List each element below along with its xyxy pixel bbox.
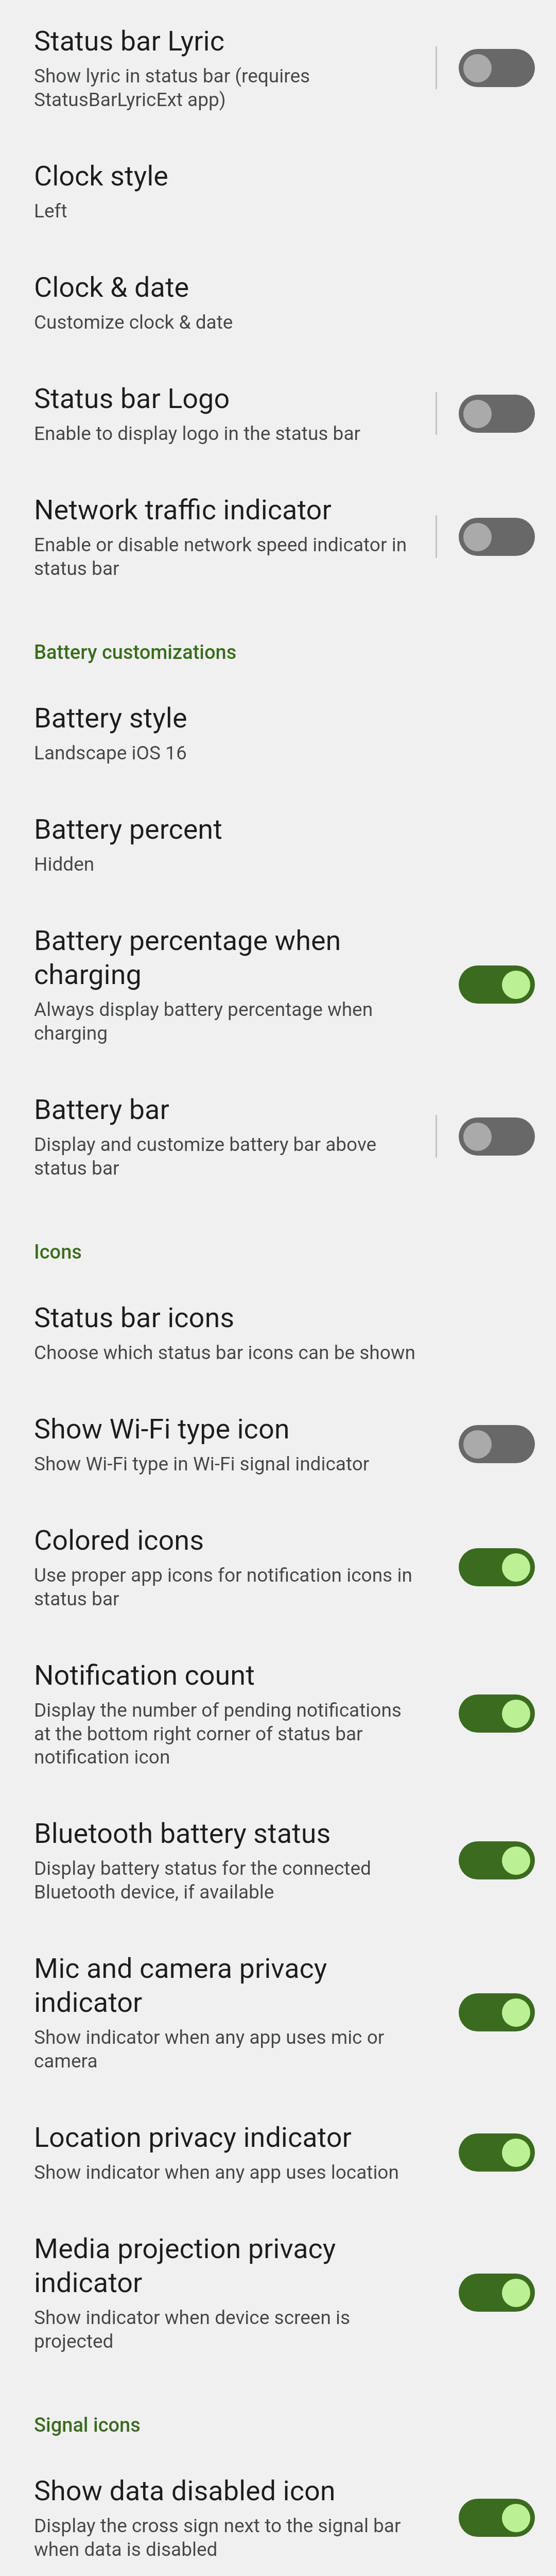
staticText: Show lyric in status bar (requires Statu… bbox=[34, 65, 310, 111]
staticText: Landscape iOS 16 bbox=[34, 742, 187, 764]
staticText: Colored icons bbox=[34, 1524, 204, 1556]
button[interactable]: Show data disabled icon bbox=[459, 2499, 535, 2537]
staticText: Enable to display logo in the status bar bbox=[34, 422, 361, 445]
button[interactable]: Battery percentage when charging bbox=[459, 965, 535, 1004]
button[interactable]: Bluetooth battery status bbox=[0, 1817, 556, 1903]
staticText: Clock & date bbox=[34, 271, 189, 303]
button[interactable]: Show Wi-Fi type icon bbox=[0, 1413, 556, 1475]
staticText: Icons bbox=[34, 1241, 82, 1264]
button[interactable]: Media projection privacy indicator bbox=[459, 2274, 535, 2312]
staticText: Display battery status for the connected… bbox=[34, 1857, 371, 1903]
button[interactable]: Battery bar bbox=[459, 1117, 535, 1156]
staticText: Battery percentage when charging bbox=[34, 924, 341, 991]
button[interactable]: Mic and camera privacy indicator bbox=[0, 1952, 556, 2072]
staticText: Battery customizations bbox=[34, 641, 237, 664]
button[interactable]: Battery bar bbox=[0, 1093, 556, 1179]
staticText: Left bbox=[34, 200, 67, 222]
staticText: Display the cross sign next to the signa… bbox=[34, 2515, 401, 2561]
staticText: Network traffic indicator bbox=[34, 494, 332, 526]
staticText: Battery percent bbox=[34, 813, 222, 845]
staticText: Status bar icons bbox=[34, 1301, 235, 1334]
staticText: Customize clock & date bbox=[34, 311, 233, 333]
staticText: Media projection privacy indicator bbox=[34, 2232, 336, 2299]
button[interactable]: Battery percentage when charging bbox=[0, 924, 556, 1044]
staticText: Display and customize battery bar above … bbox=[34, 1133, 377, 1179]
staticText: Battery style bbox=[34, 702, 187, 734]
button[interactable]: Location privacy indicator bbox=[0, 2121, 556, 2183]
staticText: Location privacy indicator bbox=[34, 2121, 352, 2154]
staticText: Clock style bbox=[34, 160, 168, 192]
staticText: Show indicator when any app uses locatio… bbox=[34, 2161, 399, 2183]
button[interactable]: Status bar icons bbox=[0, 1301, 556, 1364]
staticText: Battery bar bbox=[34, 1093, 169, 1126]
button[interactable]: Notification count bbox=[459, 1694, 535, 1733]
button[interactable]: Network traffic indicator bbox=[0, 494, 556, 580]
staticText: Status bar Logo bbox=[34, 382, 230, 415]
button[interactable]: Colored icons bbox=[459, 1548, 535, 1586]
staticText: Enable or disable network speed indicato… bbox=[34, 534, 407, 580]
button[interactable]: Battery style bbox=[0, 702, 556, 764]
button[interactable]: Clock style bbox=[0, 160, 556, 222]
button[interactable]: Show data disabled icon bbox=[0, 2475, 556, 2561]
button[interactable]: Status bar Lyric bbox=[459, 49, 535, 87]
staticText: Mic and camera privacy indicator bbox=[34, 1952, 327, 2019]
staticText: Choose which status bar icons can be sho… bbox=[34, 1342, 416, 1364]
staticText: Status bar Lyric bbox=[34, 25, 225, 57]
staticText: Show indicator when device screen is pro… bbox=[34, 2307, 351, 2352]
staticText: Display the number of pending notificati… bbox=[34, 1699, 402, 1768]
button[interactable]: Clock & date bbox=[0, 271, 556, 333]
staticText: Show indicator when any app uses mic or … bbox=[34, 2026, 385, 2072]
button[interactable]: Status bar Lyric bbox=[0, 25, 556, 111]
staticText: Show Wi-Fi type icon bbox=[34, 1413, 290, 1445]
button[interactable]: Colored icons bbox=[0, 1524, 556, 1610]
button[interactable]: Network traffic indicator bbox=[459, 518, 535, 556]
staticText: Always display battery percentage when c… bbox=[34, 998, 373, 1044]
button[interactable]: Battery percent bbox=[0, 813, 556, 875]
button[interactable]: Media projection privacy indicator bbox=[0, 2232, 556, 2352]
staticText: Signal icons bbox=[34, 2414, 141, 2437]
button[interactable]: Mic and camera privacy indicator bbox=[459, 1993, 535, 2031]
staticText: Use proper app icons for notification ic… bbox=[34, 1564, 412, 1610]
staticText: Notification count bbox=[34, 1659, 255, 1691]
staticText: Show data disabled icon bbox=[34, 2475, 336, 2507]
staticText: Show Wi-Fi type in Wi-Fi signal indicato… bbox=[34, 1453, 370, 1475]
button[interactable]: Bluetooth battery status bbox=[459, 1841, 535, 1879]
button[interactable]: Location privacy indicator bbox=[459, 2133, 535, 2172]
button[interactable]: Status bar Logo bbox=[459, 395, 535, 433]
staticText: Hidden bbox=[34, 853, 95, 875]
button[interactable]: Notification count bbox=[0, 1659, 556, 1768]
button[interactable]: Status bar Logo bbox=[0, 382, 556, 445]
button[interactable]: Show Wi-Fi type icon bbox=[459, 1425, 535, 1463]
staticText: Bluetooth battery status bbox=[34, 1817, 331, 1850]
